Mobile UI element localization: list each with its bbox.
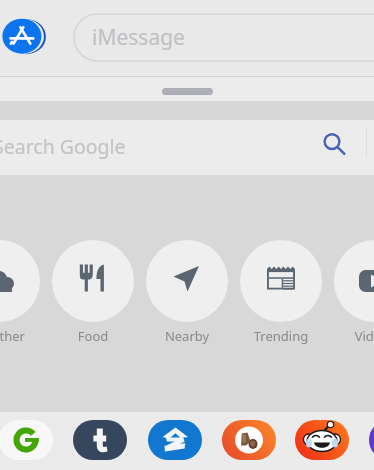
button[interactable]: Zillow	[148, 420, 202, 460]
staticText: Nearby	[146, 327, 228, 345]
button[interactable]: Reddit	[295, 420, 349, 460]
staticText: Weather	[0, 327, 40, 345]
button[interactable]: Tumblr	[73, 420, 127, 460]
staticText: iMessage	[92, 23, 185, 52]
button[interactable]: Photos	[222, 420, 276, 460]
button[interactable]: Groupon	[0, 420, 53, 460]
button[interactable]: More	[369, 420, 374, 460]
button[interactable]: Videos	[334, 240, 374, 344]
staticText: Trending	[240, 327, 322, 345]
button[interactable]: Food	[52, 240, 134, 344]
button[interactable]: Nearby	[146, 240, 228, 344]
button[interactable]: App Store	[2, 18, 46, 54]
button[interactable]: Search	[318, 130, 348, 160]
button[interactable]: Trending	[240, 240, 322, 344]
staticText: Food	[52, 327, 134, 345]
button[interactable]: iMessage	[74, 14, 374, 61]
staticText: Videos	[334, 327, 374, 345]
staticText: Search Google	[0, 133, 126, 160]
button[interactable]: Weather	[0, 240, 40, 344]
